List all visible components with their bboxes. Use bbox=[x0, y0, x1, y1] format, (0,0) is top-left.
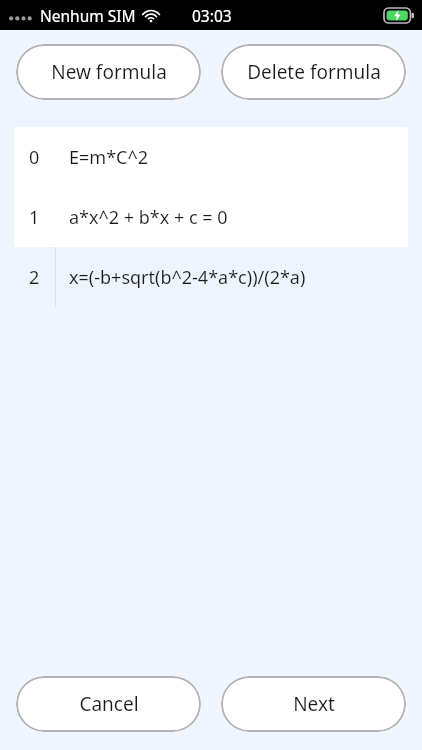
staticText: a*x^2 + b*x + c = 0 bbox=[69, 205, 228, 230]
button[interactable]: New formula bbox=[16, 44, 201, 100]
staticText: 2 bbox=[29, 265, 40, 290]
staticText: 0 bbox=[29, 145, 40, 170]
staticText: E=m*C^2 bbox=[69, 145, 149, 170]
button[interactable]: Delete formula bbox=[221, 44, 406, 100]
staticText: Cancel bbox=[79, 691, 139, 717]
staticText: Nenhum SIM bbox=[40, 5, 136, 26]
button[interactable]: Next bbox=[221, 676, 406, 732]
staticText: New formula bbox=[51, 59, 167, 85]
staticText: 03:03 bbox=[192, 5, 232, 26]
button[interactable]: 2 bbox=[14, 247, 408, 307]
staticText: Next bbox=[293, 691, 335, 717]
staticText: 1 bbox=[29, 205, 40, 230]
staticText: Delete formula bbox=[247, 59, 381, 85]
staticText: x=(-b+sqrt(b^2-4*a*c))/(2*a) bbox=[69, 265, 306, 290]
button[interactable]: 1 bbox=[14, 187, 408, 247]
button[interactable]: Cancel bbox=[16, 676, 201, 732]
button[interactable]: 0 bbox=[14, 127, 408, 187]
